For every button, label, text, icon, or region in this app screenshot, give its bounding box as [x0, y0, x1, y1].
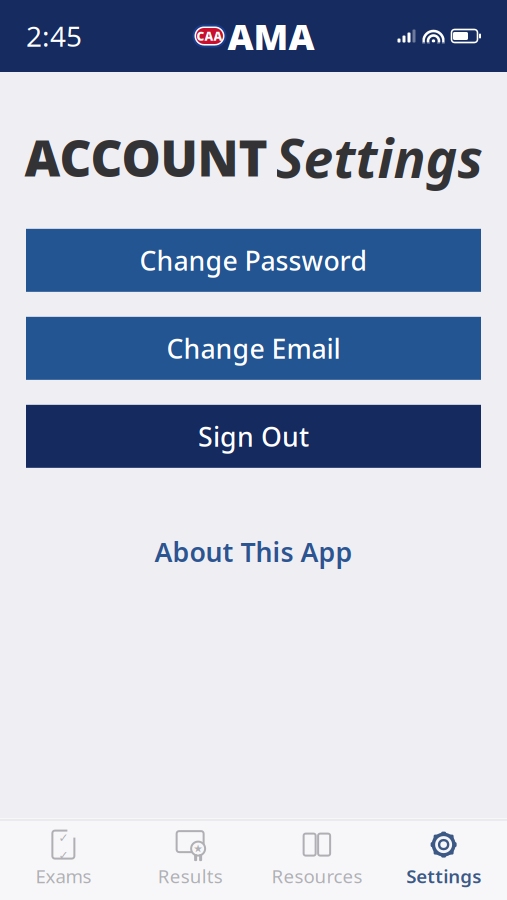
staticText: Settings: [275, 122, 482, 193]
staticText: Change Password: [139, 243, 367, 278]
staticText: CAA: [196, 28, 222, 44]
staticText: Results: [158, 864, 223, 888]
staticText: ACCOUNT: [24, 125, 267, 190]
staticText: 2:45: [26, 17, 82, 55]
staticText: Settings: [406, 864, 481, 888]
staticText: AMA: [227, 12, 314, 60]
button[interactable]: Settings: [380, 821, 507, 898]
button[interactable]: ★: [127, 821, 254, 898]
staticText: ✓: [58, 849, 68, 862]
staticText: ✓: [58, 831, 68, 845]
staticText: ★: [193, 843, 203, 855]
staticText: About This App: [154, 534, 352, 569]
button[interactable]: Change Password: [26, 229, 481, 292]
staticText: Exams: [35, 864, 91, 888]
staticText: Resources: [271, 864, 362, 888]
staticText: Change Email: [166, 331, 340, 366]
button[interactable]: ✓: [0, 821, 127, 898]
staticText: Sign Out: [198, 419, 309, 454]
button[interactable]: About This App: [134, 526, 372, 577]
button[interactable]: Sign Out: [26, 405, 481, 468]
button[interactable]: Resources: [253, 821, 380, 898]
button[interactable]: Change Email: [26, 317, 481, 380]
